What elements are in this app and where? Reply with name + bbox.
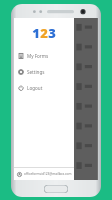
staticText: Settings xyxy=(27,69,45,75)
staticText: Logout xyxy=(27,85,43,91)
button[interactable]: Settings xyxy=(14,64,74,80)
staticText: 3 xyxy=(48,24,56,42)
button[interactable]: My Forms xyxy=(14,48,74,64)
staticText: 2 xyxy=(40,24,48,42)
staticText: My Forms xyxy=(27,53,49,59)
staticText: officeformsid123@mailbox.com xyxy=(24,172,72,176)
button[interactable]: Logout xyxy=(14,80,74,96)
staticText: 1 xyxy=(32,24,40,42)
button[interactable]: Home xyxy=(44,185,68,193)
button[interactable]: officeformsid123@mailbox.com xyxy=(14,168,74,180)
